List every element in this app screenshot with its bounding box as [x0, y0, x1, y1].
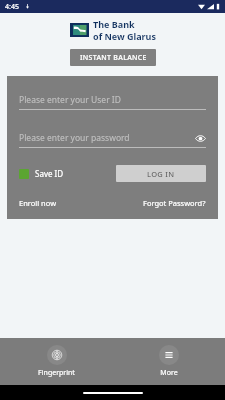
- button[interactable]: INSTANT BALANCE: [70, 49, 156, 66]
- staticText: Fingerprint: [38, 368, 75, 378]
- staticText: Please enter your password: [19, 132, 130, 144]
- button[interactable]: Enroll now: [19, 198, 57, 208]
- staticText: 4:45: [5, 2, 19, 12]
- button[interactable]: Save ID: [19, 168, 64, 179]
- staticText: Enroll now: [19, 198, 57, 208]
- button[interactable]: Fingerprint login: [30, 343, 83, 380]
- staticText: Forgot Password?: [143, 198, 206, 208]
- button[interactable]: More options: [151, 343, 187, 380]
- staticText: Save ID: [35, 168, 64, 179]
- button[interactable]: Please enter your User ID: [19, 94, 206, 110]
- button[interactable]: LOG IN: [116, 165, 206, 182]
- staticText: INSTANT BALANCE: [80, 53, 147, 63]
- staticText: of New Glarus: [93, 30, 156, 42]
- staticText: The Bank: [93, 18, 135, 30]
- staticText: Please enter your User ID: [19, 94, 121, 106]
- button[interactable]: Please enter your password: [19, 132, 206, 148]
- staticText: LOG IN: [147, 169, 175, 179]
- staticText: More: [160, 368, 178, 378]
- button[interactable]: Show password: [195, 133, 206, 144]
- button[interactable]: Forgot Password?: [143, 198, 206, 208]
